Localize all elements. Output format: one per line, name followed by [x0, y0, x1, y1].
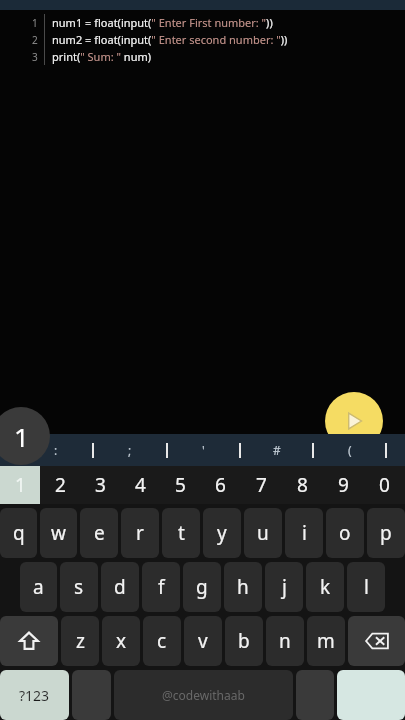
staticText: k: [320, 574, 331, 600]
button[interactable]: d: [101, 562, 139, 612]
button[interactable]: ;: [94, 434, 166, 466]
staticText: z: [76, 628, 85, 654]
staticText: 7: [256, 472, 267, 498]
staticText: a: [33, 574, 44, 600]
button[interactable]: s: [60, 562, 98, 612]
staticText: p: [380, 520, 392, 546]
button[interactable]: f: [142, 562, 180, 612]
button[interactable]: 3: [80, 466, 120, 504]
staticText: w: [51, 520, 66, 546]
staticText: s: [74, 574, 84, 600]
button[interactable]: Emoji: [72, 670, 111, 720]
button[interactable]: 6: [200, 466, 241, 504]
button[interactable]: p: [367, 508, 405, 558]
staticText: ': [202, 442, 205, 458]
button[interactable]: k: [306, 562, 344, 612]
staticText: q: [13, 520, 25, 546]
button[interactable]: z: [61, 616, 99, 666]
staticText: o: [339, 520, 351, 546]
staticText: ;: [128, 442, 132, 458]
staticText: f: [158, 574, 165, 600]
staticText: v: [198, 628, 208, 654]
button[interactable]: 0: [364, 466, 405, 504]
button[interactable]: t: [162, 508, 200, 558]
staticText: j: [282, 574, 287, 600]
button[interactable]: o: [326, 508, 364, 558]
button[interactable]: l: [347, 562, 385, 612]
button[interactable]: 1: [0, 466, 40, 504]
staticText: c: [157, 628, 167, 654]
staticText: r: [136, 520, 144, 546]
staticText: num2 = float(input(" Enter second number…: [52, 32, 288, 47]
button[interactable]: r: [121, 508, 159, 558]
staticText: u: [257, 520, 269, 546]
staticText: :: [54, 442, 58, 458]
button[interactable]: e: [80, 508, 118, 558]
button[interactable]: v: [184, 616, 222, 666]
staticText: b: [238, 628, 250, 654]
button[interactable]: Shift: [0, 616, 58, 666]
button[interactable]: x: [102, 616, 140, 666]
button[interactable]: j: [265, 562, 303, 612]
button[interactable]: q: [0, 508, 37, 558]
staticText: num1 = float(input(" Enter First number:…: [52, 15, 273, 30]
button[interactable]: i: [285, 508, 323, 558]
staticText: 1: [32, 16, 38, 30]
button[interactable]: Line 1: [0, 407, 50, 465]
staticText: @codewithaab: [162, 687, 245, 703]
staticText: 9: [338, 472, 349, 498]
button[interactable]: (: [314, 434, 385, 466]
button[interactable]: Enter: [337, 670, 405, 720]
staticText: x: [116, 628, 127, 654]
staticText: 6: [215, 472, 226, 498]
staticText: #: [273, 442, 281, 458]
staticText: h: [237, 574, 249, 600]
button[interactable]: n: [266, 616, 304, 666]
staticText: 2: [55, 472, 66, 498]
button[interactable]: y: [203, 508, 241, 558]
staticText: 8: [297, 472, 308, 498]
staticText: 4: [135, 472, 146, 498]
staticText: t: [178, 520, 185, 546]
staticText: 0: [379, 472, 390, 498]
button[interactable]: 7: [241, 466, 282, 504]
staticText: e: [94, 520, 105, 546]
staticText: y: [217, 520, 227, 546]
button[interactable]: ': [168, 434, 239, 466]
button[interactable]: h: [224, 562, 262, 612]
button[interactable]: b: [225, 616, 263, 666]
button[interactable]: w: [40, 508, 77, 558]
button[interactable]: Backspace: [348, 616, 405, 666]
staticText: 3: [32, 50, 38, 64]
button[interactable]: g: [183, 562, 221, 612]
button[interactable]: m: [307, 616, 345, 666]
staticText: 1: [14, 419, 29, 454]
button[interactable]: Period: [296, 670, 334, 720]
staticText: print(" Sum: " num): [52, 49, 152, 64]
button[interactable]: 4: [120, 466, 160, 504]
button[interactable]: #: [241, 434, 312, 466]
staticText: 3: [95, 472, 106, 498]
staticText: ?123: [19, 686, 50, 705]
staticText: g: [196, 574, 208, 600]
staticText: 5: [175, 472, 186, 498]
staticText: 2: [32, 33, 38, 47]
staticText: l: [364, 574, 369, 600]
staticText: n: [279, 628, 291, 654]
staticText: d: [114, 574, 126, 600]
button[interactable]: u: [244, 508, 282, 558]
staticText: 1: [15, 472, 26, 498]
staticText: i: [302, 520, 307, 546]
button[interactable]: Space: [114, 670, 293, 720]
button[interactable]: 5: [160, 466, 200, 504]
button[interactable]: 2: [40, 466, 80, 504]
button[interactable]: 8: [282, 466, 323, 504]
button[interactable]: ?123: [0, 670, 69, 720]
button[interactable]: :: [20, 434, 92, 466]
button[interactable]: c: [143, 616, 181, 666]
staticText: (: [348, 442, 352, 458]
button[interactable]: Run: [325, 392, 383, 450]
button[interactable]: a: [20, 562, 57, 612]
button[interactable]: 9: [323, 466, 364, 504]
staticText: m: [317, 628, 335, 654]
